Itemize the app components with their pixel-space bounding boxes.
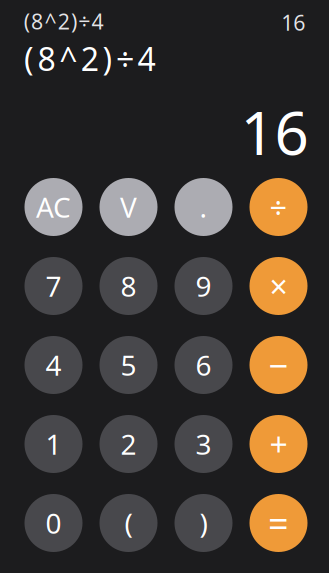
staticText: (8^2)÷4 (24, 7, 104, 35)
staticText: ( (124, 504, 132, 542)
button[interactable]: All clear (24, 178, 82, 236)
staticText: 3 (195, 425, 211, 463)
button[interactable]: Six (174, 336, 232, 394)
staticText: AC (36, 188, 71, 226)
button[interactable]: Zero (24, 494, 82, 552)
button[interactable]: One (24, 415, 82, 473)
button[interactable]: Four (24, 336, 82, 394)
staticText: 0 (45, 504, 61, 542)
staticText: 1 (45, 425, 61, 463)
button[interactable]: Multiply (249, 257, 307, 315)
staticText: 4 (45, 346, 61, 384)
staticText: 7 (45, 267, 61, 305)
button[interactable]: Plus (249, 415, 307, 473)
staticText: + (269, 423, 287, 465)
staticText: (8^2)÷4 (24, 37, 156, 80)
button[interactable]: Decimal point (174, 178, 232, 236)
staticText: − (268, 342, 288, 388)
staticText: V (120, 188, 137, 226)
button[interactable]: Equals (249, 494, 307, 552)
staticText: 8 (120, 267, 136, 305)
button[interactable]: Open parenthesis (99, 494, 157, 552)
button[interactable]: Divide (249, 178, 307, 236)
staticText: 6 (195, 346, 211, 384)
button[interactable]: Minus (249, 336, 307, 394)
staticText: × (269, 265, 287, 307)
button[interactable]: Seven (24, 257, 82, 315)
button[interactable]: Three (174, 415, 232, 473)
staticText: 2 (120, 425, 136, 463)
staticText: 16 (281, 8, 305, 36)
button[interactable]: Nine (174, 257, 232, 315)
button[interactable]: Two (99, 415, 157, 473)
staticText: = (268, 499, 289, 547)
button[interactable]: Five (99, 336, 157, 394)
staticText: ÷ (269, 187, 287, 227)
staticText: 16 (240, 92, 308, 172)
button[interactable]: Square root (99, 178, 157, 236)
staticText: ) (199, 504, 207, 542)
staticText: 5 (120, 346, 136, 384)
staticText: . (199, 188, 207, 226)
staticText: 9 (195, 267, 211, 305)
button[interactable]: Close parenthesis (174, 494, 232, 552)
button[interactable]: Eight (99, 257, 157, 315)
